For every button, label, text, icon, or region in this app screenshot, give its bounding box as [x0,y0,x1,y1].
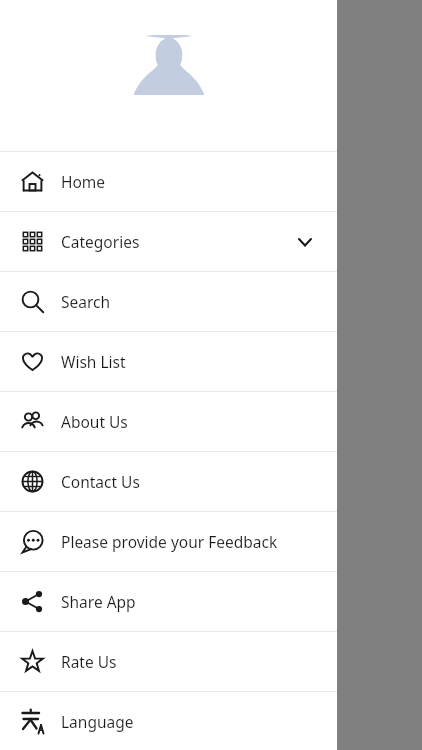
staticText: Welcome to ShopTown [28,126,264,155]
staticText: Categories [61,231,140,252]
staticText: ShopTown [62,42,157,68]
button[interactable]: Home [0,690,140,750]
button[interactable]: Language [0,692,337,750]
staticText: Contact Us [61,471,140,492]
staticText: Please provide your Feedback [61,531,278,552]
staticText: Browse thousands of products [28,165,229,184]
button[interactable]: Contact Us [0,452,337,511]
staticText: Search [61,291,111,312]
button[interactable]: Search [0,272,337,331]
staticText: About Us [61,411,128,432]
button[interactable]: Account [281,690,422,750]
button[interactable]: Please provide your Feedback [0,512,337,571]
staticText: Wish List [61,351,126,372]
staticText: Account [329,712,375,728]
other: Profile photo [134,35,204,95]
staticText: Home [61,171,106,192]
button[interactable]: Rate Us [0,632,337,691]
button[interactable]: About Us [0,392,337,451]
button[interactable]: Send Enquiry [28,206,394,252]
staticText: Language [61,711,134,732]
staticText: Rate Us [61,651,117,672]
button[interactable] [0,0,422,750]
button[interactable]: Wish List [0,332,337,391]
button[interactable]: Categories [0,212,337,271]
staticText: Home [53,712,88,728]
staticText: Share App [61,591,136,612]
button[interactable]: Home [0,152,337,211]
button[interactable]: Share App [0,572,337,631]
